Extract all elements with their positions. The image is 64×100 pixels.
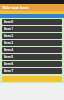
button[interactable]: Item 1	[2, 26, 62, 32]
staticText: Item 5	[4, 55, 14, 59]
button[interactable]: Item 5	[2, 54, 62, 60]
button[interactable]: Item 0	[2, 19, 62, 25]
button[interactable]: Item 7	[2, 68, 62, 74]
staticText: Item 7	[4, 69, 14, 73]
button[interactable]: Item 3	[2, 40, 62, 46]
staticText: Title text here	[2, 5, 29, 10]
button[interactable]: Item 2	[2, 33, 62, 39]
staticText: Item 2	[4, 34, 14, 38]
staticText: Item 3	[4, 41, 14, 45]
staticText: Item 6	[4, 62, 14, 66]
button[interactable]: Item 6	[2, 61, 62, 67]
staticText: Item 0	[4, 20, 14, 24]
button[interactable]: Item 4	[2, 47, 62, 53]
button[interactable]	[2, 76, 62, 82]
staticText: Item 1	[4, 27, 14, 31]
staticText: Item 4	[4, 48, 14, 52]
